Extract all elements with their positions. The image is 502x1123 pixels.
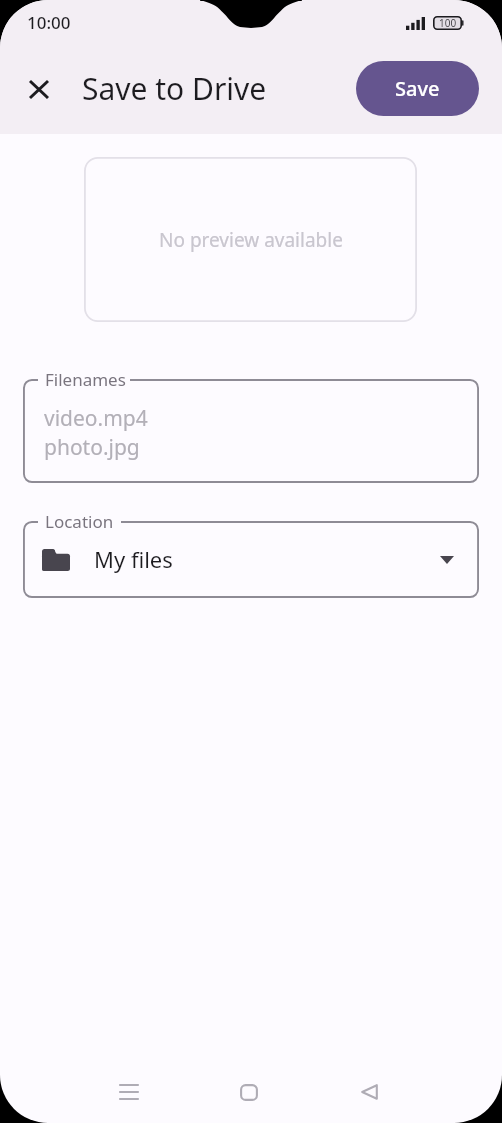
button[interactable]: Home [221,1064,277,1120]
staticText: 10:00 [27,11,71,34]
staticText: photo.jpg [44,433,140,462]
button[interactable]: Recent apps [101,1064,157,1120]
button[interactable]: video.mp4 [23,379,479,483]
staticText: 100 [439,16,457,30]
staticText: video.mp4 [44,404,148,433]
staticText: Filenames [45,368,126,391]
button[interactable]: Close [15,65,63,113]
staticText: Save to Drive [82,68,267,104]
staticText: No preview available [159,227,343,253]
button[interactable]: Save [356,61,479,116]
staticText: My files [94,544,173,574]
button[interactable]: My files [23,521,479,598]
button[interactable]: Back [341,1064,397,1120]
staticText: Location [45,510,114,533]
staticText: Save [395,75,440,102]
